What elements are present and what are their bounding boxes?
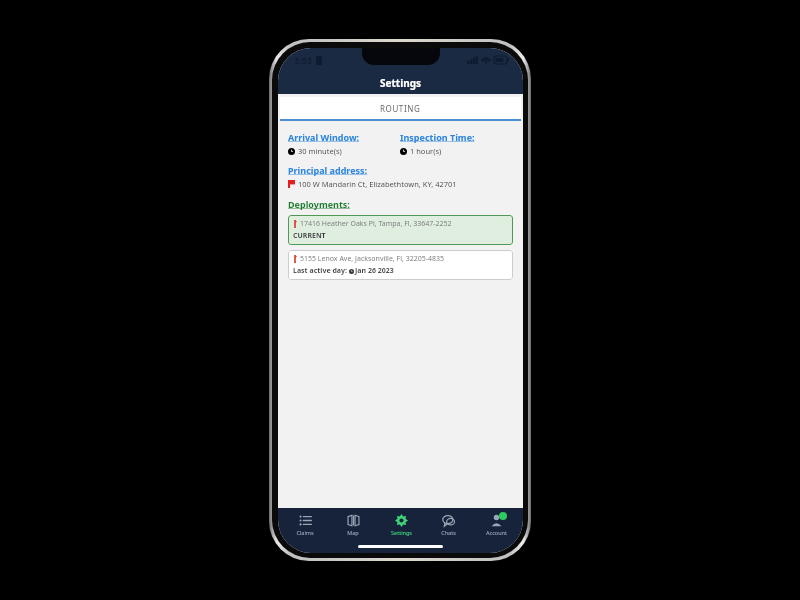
staticText: Map [347,529,359,536]
button[interactable]: 5155 Lenox Ave, Jacksonville, Fl, 32205-… [288,250,513,280]
staticText: Account [486,529,507,536]
staticText: ROUTING [380,103,421,114]
staticText: Last active day: [293,266,349,276]
button[interactable]: Principal address: [288,164,368,176]
staticText: Jan 26 2023 [355,266,394,276]
staticText: Claims [296,529,314,536]
staticText: 1 hour(s) [410,146,442,156]
button[interactable]: Chats [427,512,469,538]
button[interactable]: Deployments: [288,198,350,210]
staticText: 5155 Lenox Ave, Jacksonville, Fl, 32205-… [300,254,444,264]
button[interactable]: Settings [380,512,422,538]
button[interactable]: ROUTING [280,97,521,121]
button[interactable]: Claims [284,512,326,538]
staticText: Chats [441,529,456,536]
staticText: 17416 Heather Oaks Pl, Tampa, Fl, 33647-… [300,219,452,229]
button[interactable]: Inspection Time: [400,131,475,143]
button[interactable]: Account [475,512,517,538]
staticText: 3:53 [294,54,312,66]
staticText: Settings [380,76,421,90]
staticText: 30 minute(s) [298,146,342,156]
staticText: Settings [391,529,412,536]
staticText: 100 W Mandarin Ct, Elizabethtown, KY, 42… [298,179,457,189]
button[interactable]: 17416 Heather Oaks Pl, Tampa, Fl, 33647-… [288,215,513,245]
button[interactable]: Arrival Window: [288,131,360,143]
staticText: CURRENT [293,231,326,241]
button[interactable]: Map [332,512,374,538]
